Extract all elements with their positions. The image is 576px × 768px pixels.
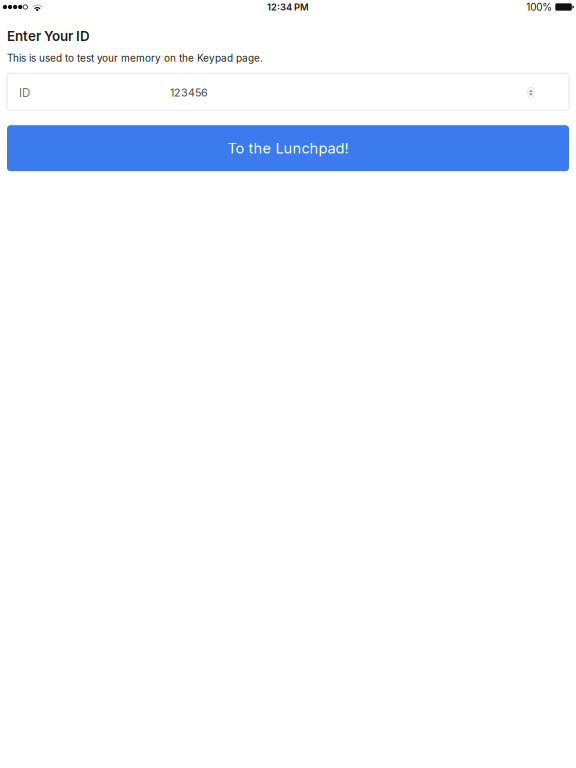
- staticText: ID: [19, 86, 30, 100]
- button[interactable]: Step ID value up or down: [528, 87, 534, 98]
- button[interactable]: To the Lunchpad!: [7, 125, 569, 171]
- staticText: 123456: [170, 86, 208, 99]
- staticText: This is used to test your memory on the …: [7, 52, 263, 64]
- staticText: To the Lunchpad!: [227, 139, 348, 157]
- button[interactable]: ID: [7, 73, 569, 110]
- staticText: 100%: [526, 1, 552, 13]
- staticText: 12:34 PM: [267, 1, 309, 13]
- staticText: Enter Your ID: [7, 28, 90, 44]
